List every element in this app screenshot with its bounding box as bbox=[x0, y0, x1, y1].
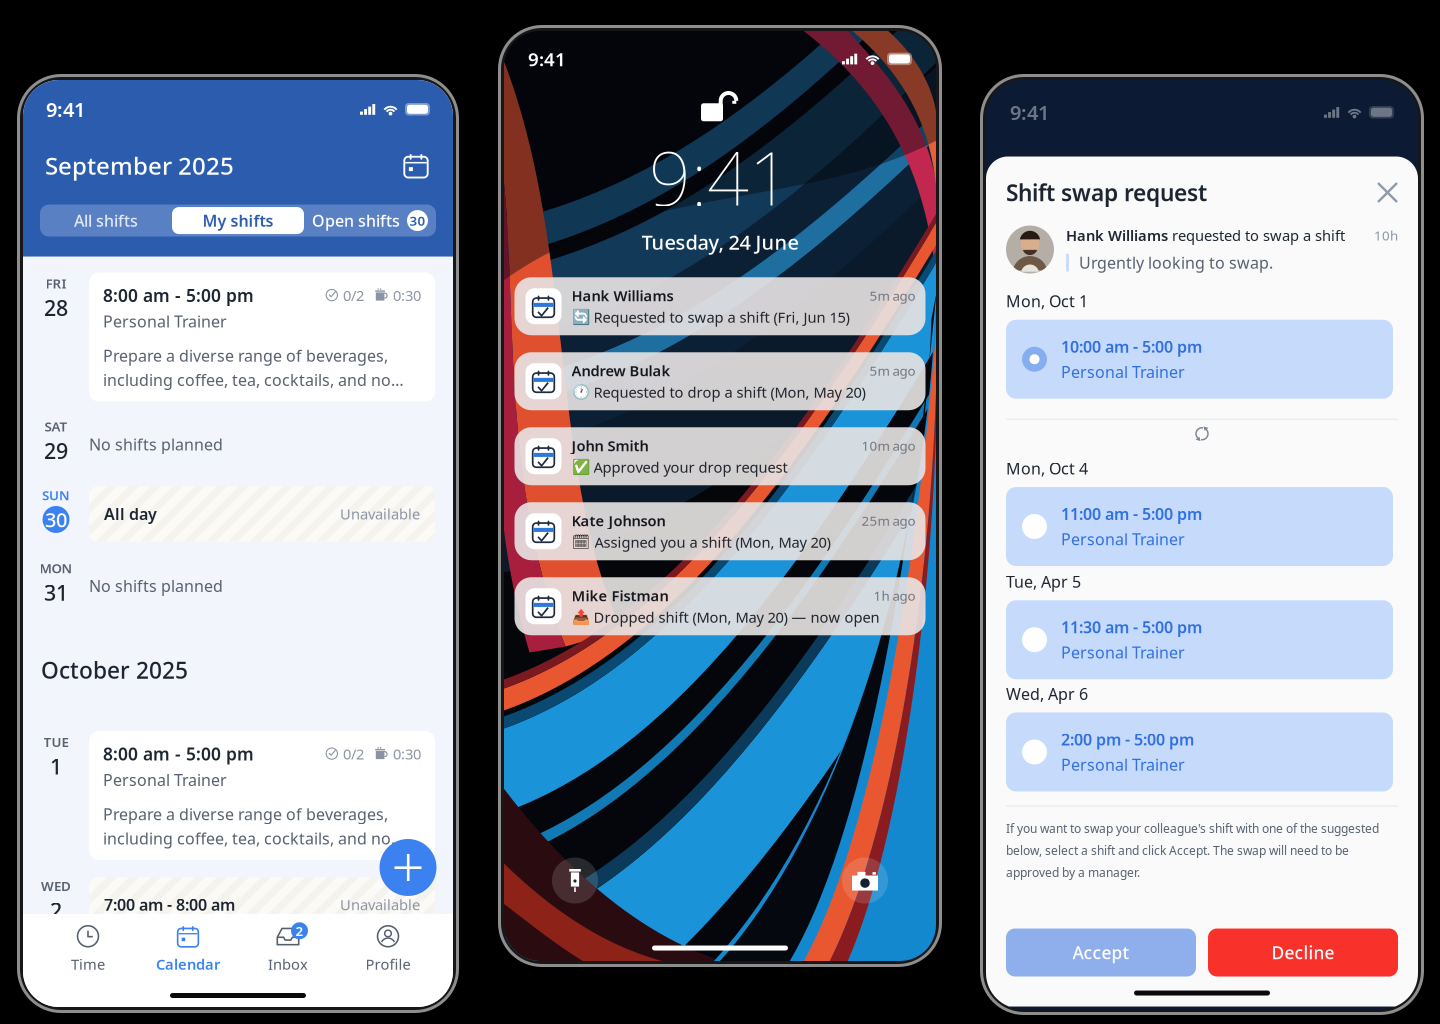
staticText: 30 bbox=[409, 212, 425, 229]
staticText: My shifts bbox=[202, 210, 273, 231]
staticText: SUN bbox=[42, 486, 70, 504]
staticText: 1 bbox=[50, 752, 62, 780]
staticText: 🕐 bbox=[571, 384, 589, 400]
button[interactable]: My shifts bbox=[172, 207, 304, 234]
staticText: 2 bbox=[50, 896, 62, 924]
staticText: Wed, Apr 6 bbox=[1006, 683, 1088, 704]
button[interactable]: Hank Williams bbox=[514, 277, 925, 335]
button[interactable]: Calendar bbox=[138, 923, 238, 975]
button[interactable]: 2 bbox=[238, 923, 338, 975]
staticText: 5m ago bbox=[869, 362, 915, 379]
staticText: Unavailable bbox=[340, 504, 420, 523]
staticText: 25m ago bbox=[861, 512, 915, 529]
button[interactable]: Decline bbox=[1208, 928, 1398, 976]
staticText: Tuesday, 24 June bbox=[641, 229, 798, 255]
staticText: Shift swap request bbox=[1006, 177, 1207, 207]
button[interactable]: All shifts bbox=[40, 205, 172, 237]
button[interactable]: Accept bbox=[1006, 928, 1196, 976]
staticText: 8:00 am - 5:00 pm bbox=[103, 742, 254, 765]
staticText: Mon, Oct 1 bbox=[1006, 290, 1088, 312]
staticText: Hank Williams bbox=[571, 286, 673, 305]
staticText: 30 bbox=[45, 506, 67, 533]
staticText: SAT bbox=[44, 418, 67, 435]
button[interactable]: 11:30 am - 5:00 pm bbox=[1006, 600, 1393, 679]
button[interactable]: Open calendar picker bbox=[399, 149, 433, 183]
staticText: 9:41 bbox=[46, 96, 85, 123]
button[interactable]: 10:00 am - 5:00 pm bbox=[1006, 320, 1393, 399]
staticText: 0/2 bbox=[339, 285, 364, 305]
staticText: including coffee, tea, cocktails, and no… bbox=[103, 828, 404, 849]
staticText: 9:41 bbox=[649, 128, 791, 226]
staticText: Calendar bbox=[156, 954, 220, 974]
staticText: 9:41 bbox=[528, 46, 566, 71]
button[interactable]: Profile bbox=[338, 923, 438, 975]
staticText: Assigned you a shift (Mon, May 20) bbox=[594, 532, 830, 552]
staticText: 2 bbox=[295, 922, 303, 940]
staticText: No shifts planned bbox=[89, 575, 223, 596]
staticText: Dropped shift (Mon, May 20) — now open bbox=[593, 607, 879, 627]
button[interactable]: Time bbox=[38, 923, 138, 975]
staticText: Hank Williams bbox=[1066, 225, 1168, 245]
staticText: Urgently looking to swap. bbox=[1079, 252, 1273, 273]
staticText: No shifts planned bbox=[89, 434, 223, 455]
staticText: Time bbox=[71, 954, 105, 974]
staticText: 10:00 am - 5:00 pm bbox=[1061, 336, 1202, 357]
staticText: October 2025 bbox=[41, 655, 188, 685]
button[interactable]: Mike Fistman bbox=[514, 577, 925, 635]
staticText: 1h ago bbox=[873, 587, 915, 604]
staticText: Prepare a diverse range of beverages, bbox=[103, 345, 388, 366]
staticText: 31 bbox=[44, 578, 68, 607]
staticText: 0/2 bbox=[339, 744, 364, 763]
staticText: ✅ bbox=[571, 459, 589, 475]
staticText: 🗓 bbox=[571, 534, 590, 550]
staticText: 🔄 bbox=[571, 309, 589, 325]
staticText: 7:00 am - 8:00 am bbox=[104, 894, 235, 915]
staticText: FRI bbox=[45, 275, 66, 292]
staticText: 10h bbox=[1374, 226, 1398, 244]
staticText: Mike Fistman bbox=[571, 586, 668, 605]
staticText: 5m ago bbox=[869, 287, 915, 304]
staticText: Kate Johnson bbox=[571, 511, 665, 530]
staticText: 29 bbox=[44, 437, 68, 465]
button[interactable]: Open shifts bbox=[304, 205, 436, 237]
staticText: TUE bbox=[43, 733, 68, 751]
staticText: Decline bbox=[1271, 941, 1334, 964]
staticText: 11:30 am - 5:00 pm bbox=[1061, 616, 1202, 638]
staticText: 0:30 bbox=[389, 285, 421, 305]
staticText: 28 bbox=[44, 294, 68, 322]
button[interactable]: Andrew Bulak bbox=[514, 352, 925, 410]
staticText: Tue, Apr 5 bbox=[1006, 571, 1081, 592]
staticText: Unavailable bbox=[340, 895, 420, 914]
staticText: Personal Trainer bbox=[103, 769, 227, 790]
button[interactable]: Close bbox=[1377, 182, 1398, 203]
staticText: 📤 bbox=[571, 609, 589, 625]
staticText: Approved your drop request bbox=[593, 457, 787, 477]
staticText: 9:41 bbox=[1010, 99, 1049, 126]
staticText: Andrew Bulak bbox=[571, 361, 670, 380]
staticText: If you want to swap your colleague's shi… bbox=[1006, 820, 1379, 836]
staticText: Mon, Oct 4 bbox=[1006, 458, 1088, 479]
staticText: All day bbox=[104, 503, 157, 524]
staticText: approved by a manager. bbox=[1006, 864, 1140, 880]
staticText: Requested to drop a shift (Mon, May 20) bbox=[593, 382, 865, 402]
button[interactable]: Flashlight bbox=[552, 857, 598, 903]
staticText: 10m ago bbox=[861, 437, 915, 454]
button[interactable]: John Smith bbox=[514, 427, 925, 485]
staticText: September 2025 bbox=[45, 150, 234, 181]
button[interactable]: Camera bbox=[842, 857, 888, 903]
staticText: Open shifts bbox=[312, 210, 400, 231]
staticText: Requested to swap a shift (Fri, Jun 15) bbox=[593, 307, 849, 327]
button[interactable]: Kate Johnson bbox=[514, 502, 925, 560]
button[interactable]: 11:00 am - 5:00 pm bbox=[1006, 487, 1393, 566]
staticText: Inbox bbox=[268, 954, 308, 974]
staticText: Personal Trainer bbox=[1061, 528, 1185, 550]
staticText: John Smith bbox=[571, 436, 648, 455]
staticText: Personal Trainer bbox=[1061, 361, 1185, 382]
staticText: 2:00 pm - 5:00 pm bbox=[1061, 729, 1194, 750]
staticText: Personal Trainer bbox=[1061, 642, 1185, 663]
staticText: including coffee, tea, cocktails, and no… bbox=[103, 369, 404, 390]
staticText: MON bbox=[39, 559, 72, 577]
button[interactable]: 2:00 pm - 5:00 pm bbox=[1006, 712, 1393, 791]
button[interactable]: Add shift bbox=[379, 839, 436, 896]
staticText: 11:00 am - 5:00 pm bbox=[1061, 503, 1202, 524]
